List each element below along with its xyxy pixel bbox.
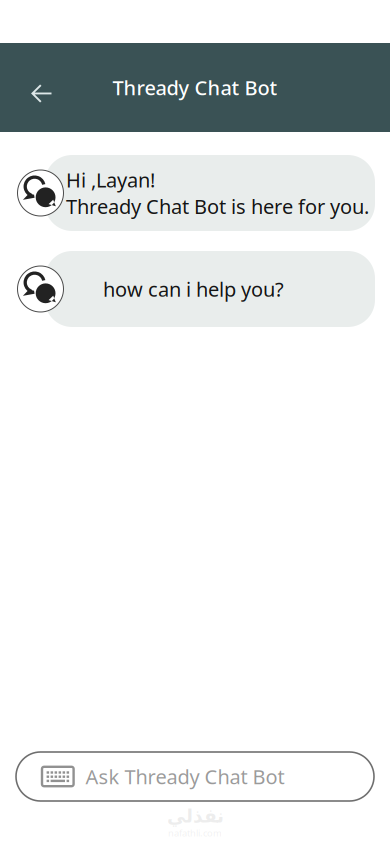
button[interactable]: Back	[20, 71, 64, 115]
button[interactable]: Ask Thready Chat Bot	[16, 752, 374, 801]
staticText: Hi ,Layan!	[66, 166, 155, 193]
staticText: نفذلي	[166, 805, 223, 827]
staticText: Ask Thready Chat Bot	[86, 763, 285, 790]
staticText: Thready Chat Bot is here for you.	[66, 193, 369, 220]
staticText: Thready Chat Bot	[112, 74, 277, 101]
staticText: how can i help you?	[103, 276, 284, 302]
staticText: nafathli.com	[168, 827, 222, 839]
